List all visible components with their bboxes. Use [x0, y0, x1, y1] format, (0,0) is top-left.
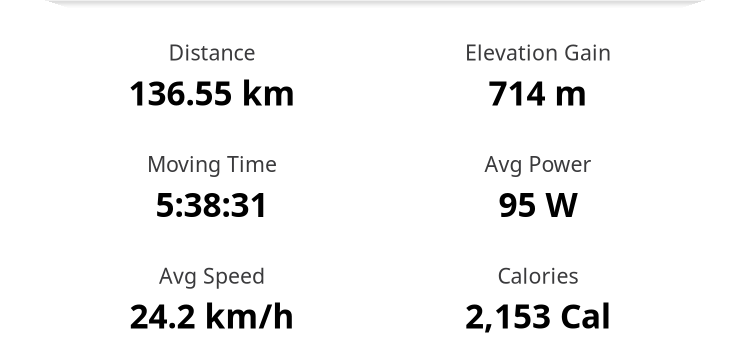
staticText: 5:38:31	[155, 182, 268, 226]
staticText: Calories	[497, 261, 578, 289]
staticText: Elevation Gain	[465, 38, 611, 66]
staticText: Distance	[168, 38, 255, 66]
staticText: 24.2 km/h	[129, 293, 294, 338]
staticText: Moving Time	[147, 150, 277, 178]
staticText: 136.55 km	[128, 70, 295, 115]
staticText: 714 m	[488, 70, 587, 115]
staticText: 95 W	[498, 182, 577, 226]
staticText: Avg Speed	[159, 261, 265, 289]
staticText: 2,153 Cal	[465, 293, 611, 338]
staticText: Avg Power	[484, 150, 591, 178]
